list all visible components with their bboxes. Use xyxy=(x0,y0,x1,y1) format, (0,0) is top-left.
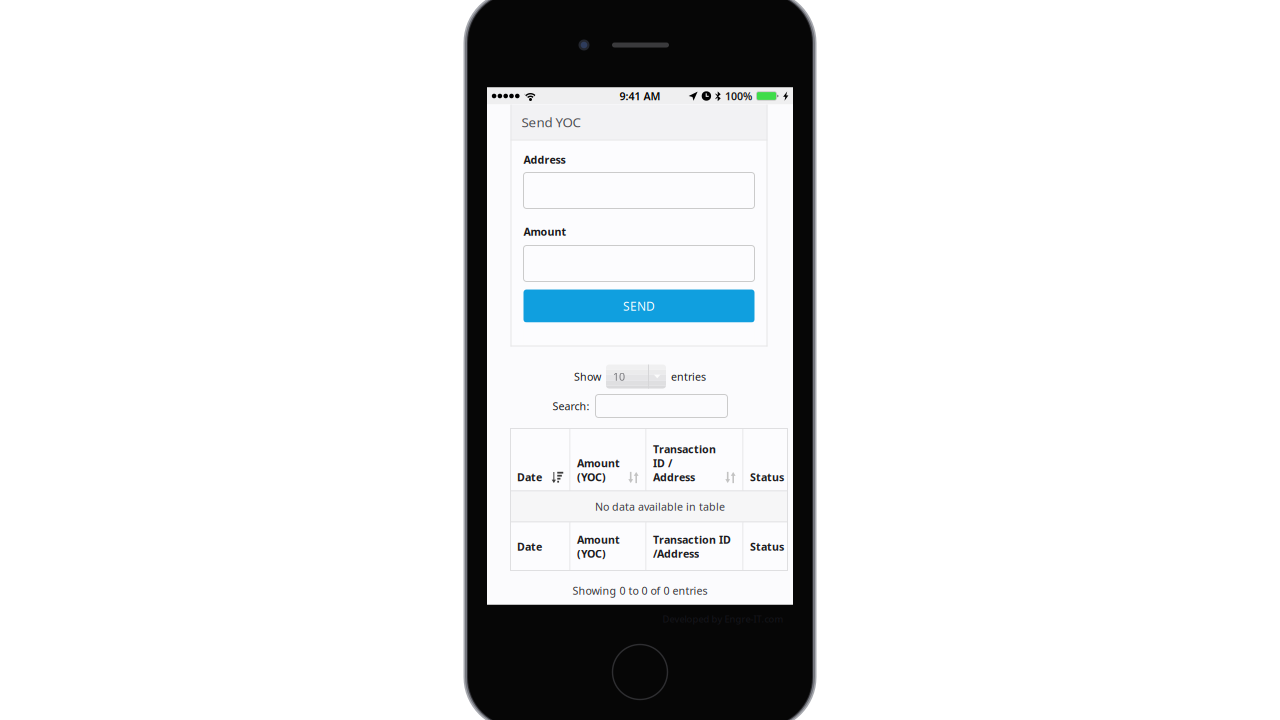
staticText: 100% xyxy=(725,89,752,103)
staticText: 10 xyxy=(613,369,625,384)
staticText: Amount xyxy=(577,456,620,470)
staticText: 9:41 AM xyxy=(619,89,660,103)
staticText: Amount xyxy=(577,532,620,547)
staticText: SEND xyxy=(623,298,655,314)
staticText: Search: xyxy=(552,399,589,413)
staticText: Send YOC xyxy=(521,113,580,131)
staticText: /Address xyxy=(653,546,699,561)
staticText: Transaction xyxy=(653,442,716,456)
staticText: Address xyxy=(653,470,695,484)
staticText: (YOC) xyxy=(577,470,606,484)
staticText: entries xyxy=(671,369,706,384)
staticText: ID / xyxy=(653,456,672,470)
staticText: Status xyxy=(750,539,784,554)
staticText: Show xyxy=(574,369,601,384)
staticText: Address xyxy=(523,152,565,167)
staticText: No data available in table xyxy=(595,499,725,514)
staticText: Date xyxy=(517,539,542,554)
button[interactable]: SEND xyxy=(523,289,754,322)
staticText: Date xyxy=(517,470,542,484)
staticText: Developed by Engre-IT.com xyxy=(662,613,783,625)
staticText: (YOC) xyxy=(577,546,606,561)
staticText: Amount xyxy=(523,224,566,239)
staticText: Status xyxy=(750,470,784,484)
button[interactable]: 10 xyxy=(606,364,666,388)
staticText: Showing 0 to 0 of 0 entries xyxy=(572,583,707,598)
staticText: Transaction ID xyxy=(653,532,731,547)
